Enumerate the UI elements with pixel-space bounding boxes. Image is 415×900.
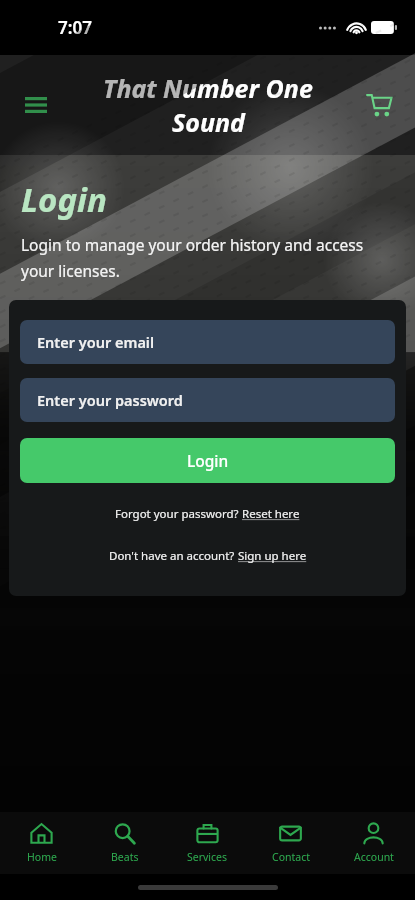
button[interactable]: Enter your password [20, 378, 395, 422]
staticText: Sign up here [238, 548, 307, 564]
staticText: Login [21, 177, 107, 222]
button[interactable]: Home [0, 812, 83, 874]
button[interactable]: Contact [249, 812, 332, 874]
staticText: Enter your password [37, 390, 183, 410]
staticText: Contact [272, 850, 310, 864]
button[interactable]: Services [166, 812, 249, 874]
button[interactable]: Menu [18, 87, 54, 123]
staticText: 7:07 [58, 16, 92, 39]
staticText: Services [187, 850, 228, 864]
button[interactable]: Reset here [242, 506, 300, 522]
staticText: Home [27, 850, 57, 864]
staticText: Account [354, 850, 394, 864]
staticText: Login [187, 450, 229, 471]
button[interactable]: Cart [361, 87, 397, 123]
staticText: Enter your email [37, 332, 155, 352]
button[interactable]: Login [20, 438, 395, 483]
staticText: Sound [172, 105, 245, 139]
button[interactable]: Sign up here [238, 548, 307, 564]
button[interactable]: Account [332, 812, 415, 874]
staticText: That Number One [103, 71, 313, 105]
staticText: Don't have an account? [109, 548, 238, 564]
button[interactable]: Enter your email [20, 320, 395, 364]
staticText: Reset here [242, 506, 300, 522]
staticText: Forgot your password? [115, 506, 242, 522]
button[interactable]: Beats [83, 812, 166, 874]
staticText: Login to manage your order history and a… [21, 234, 375, 282]
staticText: Beats [111, 850, 139, 864]
